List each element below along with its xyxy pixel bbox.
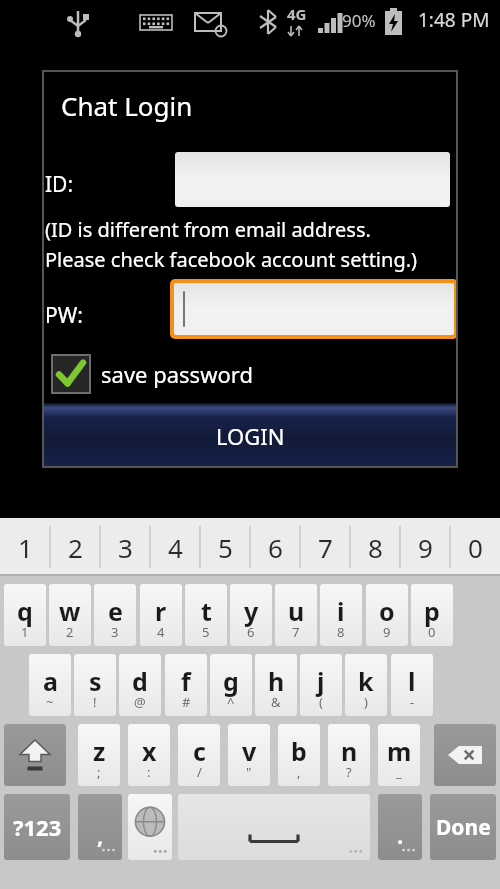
button[interactable] [175,152,450,207]
staticText: i [337,594,345,628]
button[interactable]: p [411,584,453,646]
staticText: d [132,664,148,698]
staticText: " [246,763,252,781]
button[interactable]: , [78,794,122,860]
button[interactable]: Shift [4,724,66,786]
button[interactable]: r [140,584,182,646]
staticText: , [97,820,104,850]
staticText: # [182,693,191,711]
button[interactable]: 2 [50,518,100,576]
button[interactable]: k [345,654,387,716]
staticText: (ID is different from email address. [45,216,371,243]
button[interactable]: q [4,584,46,646]
button[interactable]: x [128,724,170,786]
staticText: 7 [292,623,300,641]
staticText: save password [101,359,253,389]
staticText: k [358,664,374,698]
button[interactable]: 8 [350,518,400,576]
staticText: u [288,594,305,628]
button[interactable]: a [29,654,71,716]
button[interactable]: 3 [100,518,150,576]
button[interactable]: d [119,654,161,716]
staticText: / [197,763,202,781]
button[interactable]: n [328,724,370,786]
button[interactable]: w [49,584,91,646]
staticText: a [43,664,58,698]
staticText: x [142,734,157,768]
button[interactable]: 6 [250,518,300,576]
staticText: LOGIN [216,421,285,451]
staticText: 9 [418,530,433,565]
staticText: b [291,734,307,768]
staticText: ~ [46,693,54,711]
staticText: p [424,594,440,628]
staticText: 4G [287,4,307,24]
button[interactable]: save password [51,351,253,397]
button[interactable]: l [391,654,433,716]
staticText: , [297,763,301,781]
button[interactable]: i [320,584,362,646]
button[interactable]: Change language [128,794,172,860]
staticText: ? [346,763,352,781]
staticText: 90% [342,9,376,32]
button[interactable]: c [178,724,220,786]
staticText: 5 [218,530,233,565]
button[interactable]: v [228,724,270,786]
button[interactable]: 4 [150,518,200,576]
staticText: 0 [428,623,436,641]
button[interactable]: . [378,794,422,860]
button[interactable]: h [255,654,297,716]
staticText: 8 [368,530,383,565]
staticText: q [17,594,33,628]
staticText: Done [436,813,491,842]
staticText: v [242,734,257,768]
button[interactable]: 9 [400,518,450,576]
staticText: _ [396,763,402,781]
button[interactable]: o [366,584,408,646]
button[interactable]: g [210,654,252,716]
staticText: ! [93,693,97,711]
staticText: @ [134,693,146,711]
staticText: PW: [45,301,83,330]
staticText: y [244,594,259,628]
button[interactable]: Space [178,794,370,860]
button[interactable]: e [94,584,136,646]
button[interactable]: Done [430,794,496,860]
button[interactable]: t [185,584,227,646]
button[interactable]: s [74,654,116,716]
button[interactable]: Backspace [434,724,496,786]
button[interactable]: y [230,584,272,646]
button[interactable]: ?123 [4,794,70,860]
button[interactable]: 1 [0,518,50,576]
staticText: 8 [337,623,345,641]
staticText: Chat Login [61,88,193,123]
staticText: ) [364,693,368,711]
staticText: ?123 [13,812,62,842]
button[interactable]: m [378,724,420,786]
staticText: z [93,734,106,768]
staticText: g [223,664,239,698]
staticText: n [341,734,358,768]
staticText: ID: [45,170,74,199]
staticText: r [155,594,167,628]
button[interactable]: LOGIN [42,403,458,468]
button[interactable]: b [278,724,320,786]
button[interactable]: f [165,654,207,716]
staticText: w [59,594,81,628]
button[interactable] [174,283,454,335]
button[interactable]: u [275,584,317,646]
staticText: j [317,664,325,698]
button[interactable]: 5 [200,518,250,576]
button[interactable]: z [78,724,120,786]
staticText: - [410,693,415,711]
staticText: 1 [21,623,29,641]
button[interactable]: 0 [450,518,500,576]
staticText: 3 [118,530,133,565]
staticText: 1 [18,530,33,565]
staticText: l [408,664,416,698]
staticText: ; [97,763,101,781]
button[interactable]: 7 [300,518,350,576]
staticText: 2 [66,623,74,641]
staticText: 1:48 PM [418,7,490,33]
button[interactable]: j [300,654,342,716]
